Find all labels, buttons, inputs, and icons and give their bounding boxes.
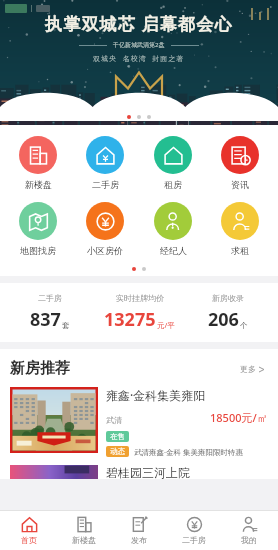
staticText: 新房推荐 bbox=[10, 359, 70, 378]
button[interactable]: 二手房 bbox=[26, 293, 74, 332]
staticText: 双城央 名校湾 封面之著 bbox=[93, 54, 185, 64]
button[interactable]: 资讯 bbox=[210, 135, 270, 191]
button[interactable]: 我的 bbox=[223, 514, 275, 547]
button[interactable]: 新楼盘 bbox=[8, 135, 68, 191]
staticText: 新楼盘 bbox=[72, 535, 96, 545]
staticText: 碧桂园三河上院 bbox=[106, 465, 190, 479]
staticText: 13275 bbox=[104, 307, 156, 332]
staticText: 新楼盘 bbox=[25, 179, 52, 190]
button[interactable]: 更多 bbox=[236, 360, 268, 378]
button[interactable]: 经纪人 bbox=[143, 201, 203, 257]
staticText: 837 bbox=[30, 307, 61, 332]
staticText: 在售 bbox=[110, 432, 125, 441]
button[interactable]: 二手房 bbox=[75, 135, 135, 191]
staticText: 新房收录 bbox=[212, 293, 244, 303]
staticText: 武清 bbox=[106, 415, 122, 425]
staticText: 206 bbox=[208, 307, 239, 332]
button[interactable]: 求租 bbox=[210, 201, 270, 257]
staticText: 资讯 bbox=[231, 179, 249, 190]
staticText: 执掌双城芯 启幕都会心 bbox=[45, 12, 233, 35]
staticText: 元/平 bbox=[157, 320, 175, 330]
staticText: 套 bbox=[62, 321, 70, 330]
staticText: 我的 bbox=[241, 535, 257, 545]
button[interactable]: 租房 bbox=[143, 135, 203, 191]
button[interactable]: 地图找房 bbox=[8, 201, 68, 257]
staticText: 二手房 bbox=[182, 535, 206, 545]
staticText: 更多 bbox=[240, 364, 256, 374]
button[interactable]: 雍鑫·金科集美雍阳 bbox=[0, 384, 278, 460]
staticText: 雍鑫·金科集美雍阳 bbox=[106, 387, 206, 403]
staticText: 实时挂牌均价 bbox=[116, 293, 164, 303]
button[interactable]: 碧桂园三河上院 bbox=[0, 465, 278, 479]
staticText: 二手房 bbox=[92, 179, 119, 190]
staticText: 千亿新城武清第2盘 bbox=[113, 41, 165, 49]
staticText: 求租 bbox=[231, 245, 249, 256]
staticText: 租房 bbox=[164, 179, 182, 190]
staticText: 经纪人 bbox=[160, 245, 187, 256]
staticText: 动态 bbox=[110, 447, 125, 456]
staticText: 个 bbox=[240, 321, 248, 330]
button[interactable]: 首页 bbox=[3, 514, 55, 547]
staticText: 18500元/㎡ bbox=[210, 410, 268, 425]
button[interactable]: 实时挂牌均价 bbox=[100, 293, 179, 332]
button[interactable]: 新楼盘 bbox=[58, 514, 110, 547]
button[interactable]: Promotion banner bbox=[0, 0, 278, 121]
staticText: 首页 bbox=[21, 535, 37, 545]
button[interactable]: 新房收录 bbox=[204, 293, 252, 332]
staticText: 地图找房 bbox=[20, 245, 56, 256]
button[interactable]: 二手房 bbox=[168, 514, 220, 547]
staticText: 小区房价 bbox=[87, 245, 123, 256]
staticText: 二手房 bbox=[38, 293, 62, 303]
staticText: 发布 bbox=[131, 535, 147, 545]
button[interactable]: 小区房价 bbox=[75, 201, 135, 257]
staticText: 武清雍鑫·金科 集美雍阳限时特惠 bbox=[134, 447, 243, 457]
button[interactable]: 发布 bbox=[113, 514, 165, 547]
